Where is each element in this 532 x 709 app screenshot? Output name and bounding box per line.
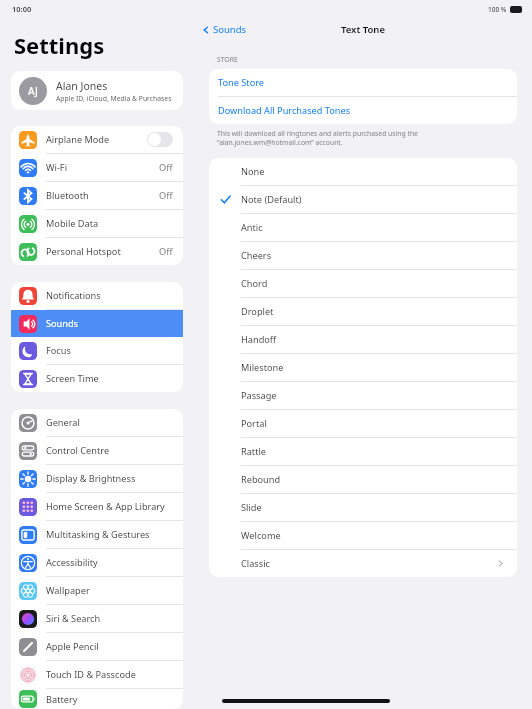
staticText: Cheers (241, 249, 505, 262)
staticText: This will download all ringtones and ale… (217, 129, 418, 147)
staticText: Sounds (213, 23, 247, 36)
staticText: Apple Pencil (46, 640, 173, 653)
staticText: Screen Time (46, 372, 173, 385)
staticText: Bluetooth (46, 189, 159, 202)
button[interactable]: Accessibility (11, 549, 183, 576)
button[interactable]: Screen Time (11, 365, 183, 392)
staticText: Touch ID & Passcode (46, 668, 173, 681)
button[interactable]: Siri & Search (11, 605, 183, 632)
staticText: Settings (14, 30, 105, 60)
staticText: Siri & Search (46, 612, 173, 625)
staticText: Mobile Data (46, 217, 173, 230)
staticText: Alan Jones (56, 79, 108, 93)
staticText: Chord (241, 277, 505, 290)
staticText: 100 % (488, 5, 507, 14)
button[interactable]: Control Centre (11, 437, 183, 464)
staticText: Portal (241, 417, 505, 430)
button[interactable]: None (209, 158, 517, 185)
button[interactable]: Rebound (209, 466, 517, 493)
staticText: Apple ID, iCloud, Media & Purchases (56, 94, 172, 103)
button[interactable]: Airplane Mode toggle (147, 132, 173, 147)
staticText: General (46, 416, 173, 429)
staticText: Passage (241, 389, 505, 402)
staticText: Wallpaper (46, 584, 173, 597)
staticText: Droplet (241, 305, 505, 318)
button[interactable]: Download All Purchased Tones (209, 97, 517, 124)
staticText: Notifications (46, 289, 173, 302)
button[interactable]: Touch ID & Passcode (11, 661, 183, 688)
staticText: Classic (241, 557, 496, 570)
staticText: Battery (46, 693, 173, 706)
staticText: Off (159, 161, 173, 174)
button[interactable]: Battery (11, 689, 183, 709)
staticText: Sounds (46, 317, 173, 330)
staticText: Off (159, 245, 173, 258)
button[interactable]: Note (Default) (209, 186, 517, 213)
staticText: None (241, 165, 505, 178)
button[interactable]: Handoff (209, 326, 517, 353)
staticText: Rebound (241, 473, 505, 486)
staticText: Airplane Mode (46, 133, 147, 146)
staticText: Off (159, 189, 173, 202)
button[interactable]: Portal (209, 410, 517, 437)
button[interactable]: Antic (209, 214, 517, 241)
button[interactable]: Cheers (209, 242, 517, 269)
button[interactable]: Display & Brightness (11, 465, 183, 492)
staticText: Display & Brightness (46, 472, 173, 485)
staticText: Antic (241, 221, 505, 234)
button[interactable]: General (11, 409, 183, 436)
button[interactable]: Classic (209, 550, 517, 577)
button[interactable]: Bluetooth (11, 182, 183, 209)
staticText: AJ (28, 84, 38, 98)
button[interactable]: Airplane Mode (11, 126, 183, 153)
button[interactable]: Chord (209, 270, 517, 297)
staticText: 10:00 (12, 4, 32, 14)
staticText: Download All Purchased Tones (218, 104, 351, 117)
button[interactable]: Wallpaper (11, 577, 183, 604)
staticText: Welcome (241, 529, 505, 542)
button[interactable]: Home Screen & App Library (11, 493, 183, 520)
button[interactable]: AJ (11, 71, 183, 110)
staticText: Multitasking & Gestures (46, 528, 173, 541)
staticText: Home Screen & App Library (46, 500, 173, 513)
staticText: STORE (217, 55, 238, 64)
button[interactable]: Mobile Data (11, 210, 183, 237)
button[interactable]: Slide (209, 494, 517, 521)
button[interactable]: Droplet (209, 298, 517, 325)
staticText: Personal Hotspot (46, 245, 159, 258)
staticText: Rattle (241, 445, 505, 458)
button[interactable]: Welcome (209, 522, 517, 549)
staticText: Tone Store (218, 76, 264, 89)
staticText: Accessibility (46, 556, 173, 569)
staticText: Milestone (241, 361, 505, 374)
staticText: Focus (46, 344, 173, 357)
button[interactable]: Passage (209, 382, 517, 409)
button[interactable]: Sounds (11, 310, 183, 337)
button[interactable]: Apple Pencil (11, 633, 183, 660)
staticText: Text Tone (341, 23, 385, 36)
button[interactable]: Multitasking & Gestures (11, 521, 183, 548)
button[interactable]: Wi-Fi (11, 154, 183, 181)
staticText: Wi-Fi (46, 161, 159, 174)
button[interactable]: Tone Store (209, 69, 517, 96)
button[interactable]: Personal Hotspot (11, 238, 183, 265)
staticText: Handoff (241, 333, 505, 346)
button[interactable]: Rattle (209, 438, 517, 465)
staticText: Note (Default) (241, 193, 505, 206)
button[interactable]: Milestone (209, 354, 517, 381)
button[interactable]: Notifications (11, 282, 183, 309)
staticText: Slide (241, 501, 505, 514)
button[interactable]: Focus (11, 337, 183, 364)
staticText: Control Centre (46, 444, 173, 457)
button[interactable]: Sounds (194, 20, 255, 39)
